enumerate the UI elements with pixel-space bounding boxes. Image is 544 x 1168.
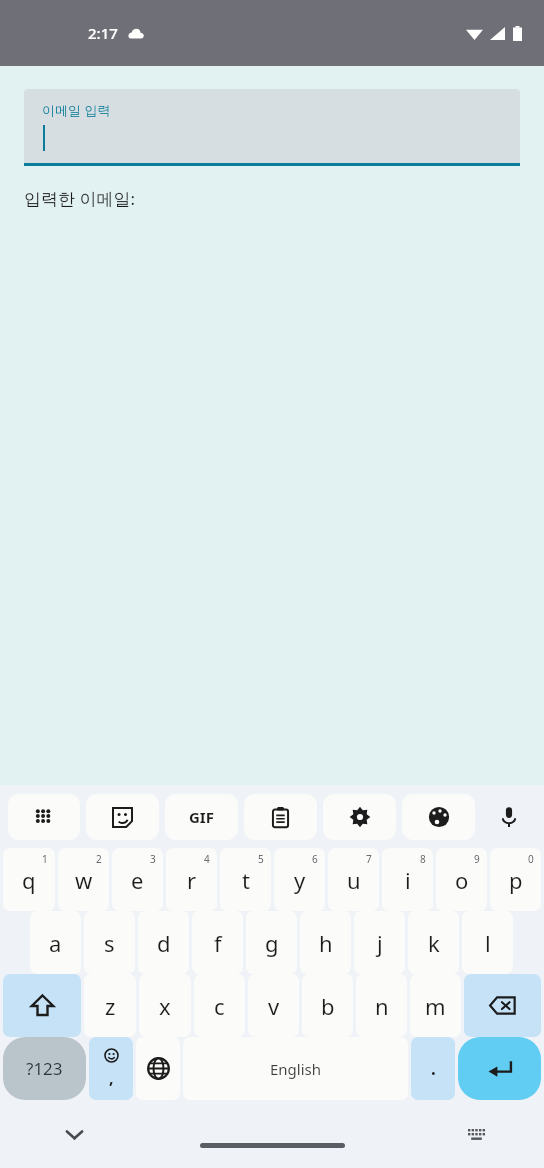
staticText: 7 bbox=[366, 852, 372, 866]
button[interactable]: d bbox=[138, 911, 189, 974]
button[interactable]: i bbox=[382, 848, 433, 911]
staticText: a bbox=[49, 928, 62, 958]
button[interactable]: r bbox=[166, 848, 217, 911]
staticText: 6 bbox=[312, 852, 318, 866]
button[interactable]: Voice input bbox=[481, 785, 536, 848]
button[interactable]: Settings bbox=[323, 794, 396, 840]
button[interactable]: z bbox=[84, 974, 136, 1037]
button[interactable]: q bbox=[3, 848, 55, 911]
button[interactable]: Enter bbox=[458, 1037, 541, 1100]
staticText: GIF bbox=[189, 807, 214, 827]
button[interactable]: n bbox=[356, 974, 407, 1037]
staticText: c bbox=[214, 991, 225, 1021]
button[interactable]: s bbox=[84, 911, 135, 974]
staticText: l bbox=[485, 928, 491, 958]
button[interactable]: Stickers bbox=[86, 794, 159, 840]
staticText: q bbox=[22, 865, 36, 895]
staticText: ?123 bbox=[26, 1057, 63, 1080]
staticText: n bbox=[375, 991, 389, 1021]
staticText: r bbox=[187, 865, 197, 895]
button[interactable]: x bbox=[139, 974, 191, 1037]
button[interactable]: 이메일 입력 bbox=[24, 89, 520, 166]
staticText: 9 bbox=[474, 852, 480, 866]
staticText: , bbox=[109, 1067, 114, 1089]
staticText: p bbox=[509, 865, 523, 895]
button[interactable]: GIF bbox=[165, 794, 238, 840]
staticText: t bbox=[242, 865, 250, 895]
staticText: 입력한 이메일: bbox=[24, 187, 135, 210]
staticText: z bbox=[105, 991, 116, 1021]
staticText: 1 bbox=[42, 852, 48, 866]
button[interactable]: w bbox=[58, 848, 109, 911]
staticText: v bbox=[268, 991, 280, 1021]
staticText: w bbox=[75, 865, 93, 895]
button[interactable]: f bbox=[192, 911, 243, 974]
button[interactable]: ?123 bbox=[3, 1037, 86, 1100]
button[interactable]: Apps bbox=[8, 794, 80, 840]
staticText: 0 bbox=[528, 852, 534, 866]
staticText: i bbox=[405, 865, 411, 895]
button[interactable]: , bbox=[89, 1037, 133, 1100]
button[interactable]: e bbox=[112, 848, 163, 911]
button[interactable]: b bbox=[302, 974, 353, 1037]
button[interactable]: Clipboard bbox=[244, 794, 317, 840]
staticText: x bbox=[159, 991, 171, 1021]
staticText: d bbox=[157, 928, 171, 958]
staticText: u bbox=[347, 865, 361, 895]
staticText: 3 bbox=[150, 852, 156, 866]
button[interactable]: Switch keyboard bbox=[456, 1114, 496, 1154]
staticText: k bbox=[428, 928, 440, 958]
button[interactable]: c bbox=[194, 974, 245, 1037]
button[interactable]: o bbox=[436, 848, 487, 911]
button[interactable]: t bbox=[220, 848, 271, 911]
button[interactable]: g bbox=[246, 911, 297, 974]
button[interactable]: k bbox=[408, 911, 459, 974]
button[interactable]: v bbox=[248, 974, 299, 1037]
staticText: m bbox=[425, 991, 446, 1021]
staticText: e bbox=[131, 865, 144, 895]
staticText: 2:17 bbox=[88, 23, 118, 43]
staticText: 2 bbox=[96, 852, 102, 866]
button[interactable]: j bbox=[354, 911, 405, 974]
button[interactable]: m bbox=[410, 974, 461, 1037]
staticText: 5 bbox=[258, 852, 264, 866]
staticText: o bbox=[455, 865, 469, 895]
staticText: g bbox=[265, 928, 279, 958]
staticText: English bbox=[270, 1059, 322, 1079]
staticText: j bbox=[377, 928, 383, 958]
staticText: 4 bbox=[204, 852, 210, 866]
button[interactable]: p bbox=[490, 848, 541, 911]
button[interactable]: English bbox=[183, 1037, 408, 1100]
staticText: h bbox=[319, 928, 333, 958]
button[interactable]: a bbox=[30, 911, 81, 974]
button[interactable]: l bbox=[462, 911, 513, 974]
staticText: f bbox=[214, 928, 222, 958]
button[interactable]: Change language bbox=[136, 1037, 180, 1100]
button[interactable]: y bbox=[274, 848, 325, 911]
staticText: 8 bbox=[420, 852, 426, 866]
button[interactable]: Shift bbox=[3, 974, 81, 1037]
button[interactable]: Themes bbox=[402, 794, 475, 840]
button[interactable]: Hide keyboard bbox=[52, 1112, 96, 1156]
staticText: b bbox=[321, 991, 335, 1021]
button[interactable]: Backspace bbox=[464, 974, 541, 1037]
button[interactable]: . bbox=[411, 1037, 455, 1100]
staticText: . bbox=[431, 1057, 436, 1080]
button[interactable]: h bbox=[300, 911, 351, 974]
staticText: y bbox=[294, 865, 306, 895]
button[interactable]: u bbox=[328, 848, 379, 911]
staticText: 이메일 입력 bbox=[42, 101, 111, 119]
staticText: s bbox=[104, 928, 115, 958]
